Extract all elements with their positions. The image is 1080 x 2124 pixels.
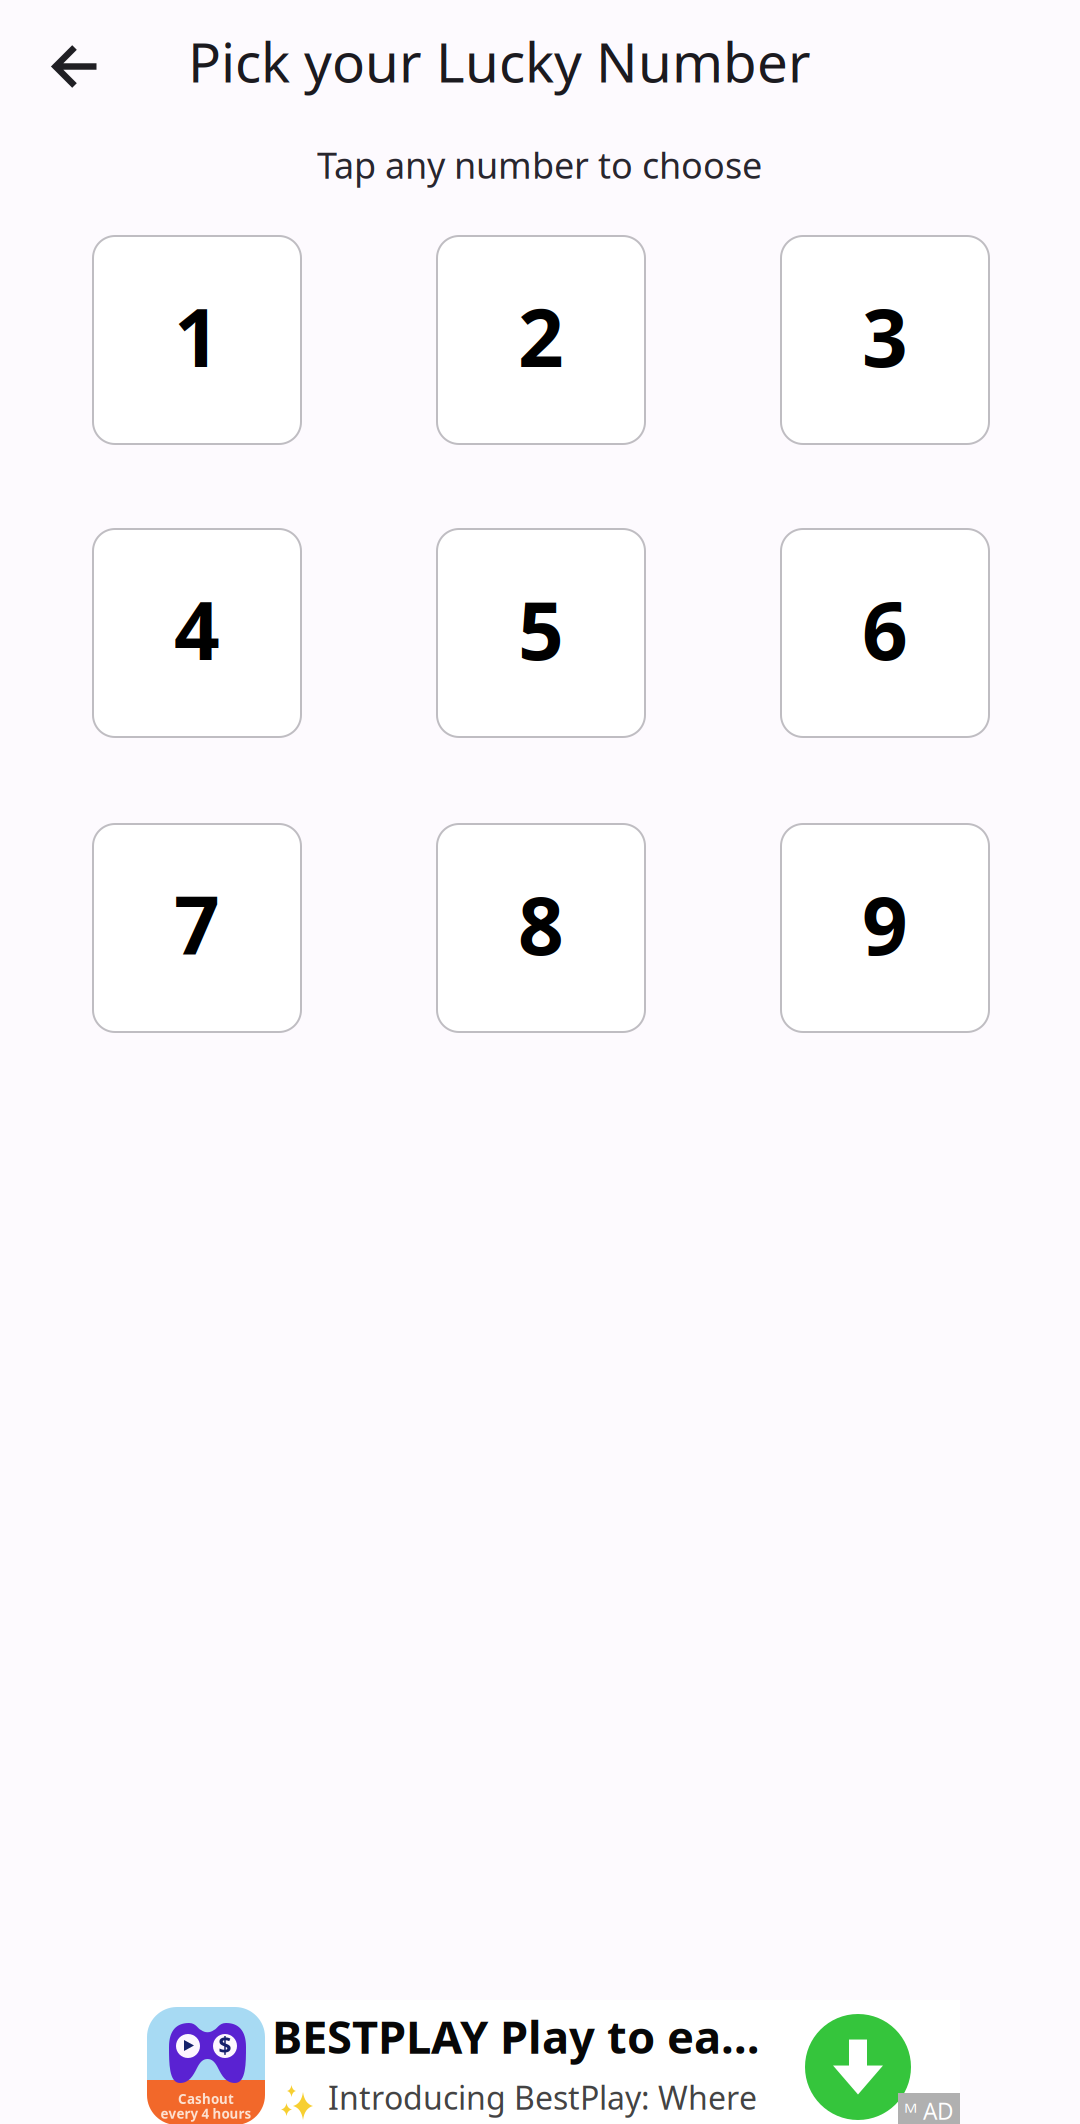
- button[interactable]: Back: [21, 12, 131, 122]
- staticText: 5: [518, 576, 564, 682]
- button[interactable]: Advertisement: BESTPLAY Play to earn — i…: [120, 2000, 960, 2124]
- staticText: 7: [174, 871, 220, 977]
- staticText: Cashout: [178, 2090, 234, 2108]
- button[interactable]: 8: [437, 824, 645, 1032]
- button[interactable]: 4: [93, 529, 301, 737]
- staticText: every 4 hours: [160, 2105, 251, 2122]
- staticText: Pick your Lucky Number: [188, 25, 811, 98]
- button[interactable]: 6: [781, 529, 989, 737]
- button[interactable]: 1: [93, 236, 301, 444]
- staticText: BESTPLAY Play to ea…: [272, 2006, 760, 2066]
- button[interactable]: 9: [781, 824, 989, 1032]
- staticText: ᴹ AD: [904, 2096, 954, 2124]
- staticText: 1: [174, 283, 220, 389]
- button[interactable]: 3: [781, 236, 989, 444]
- staticText: 6: [862, 576, 908, 682]
- staticText: 9: [862, 871, 908, 977]
- button[interactable]: 2: [437, 236, 645, 444]
- button[interactable]: 5: [437, 529, 645, 737]
- staticText: 2: [518, 283, 564, 389]
- staticText: 8: [518, 871, 564, 977]
- staticText: 4: [174, 576, 220, 682]
- staticText: $: [218, 2030, 231, 2060]
- staticText: 3: [862, 283, 908, 389]
- button[interactable]: 7: [93, 824, 301, 1032]
- staticText: Introducing BestPlay: Where: [328, 2076, 757, 2118]
- staticText: Tap any number to choose: [317, 141, 762, 189]
